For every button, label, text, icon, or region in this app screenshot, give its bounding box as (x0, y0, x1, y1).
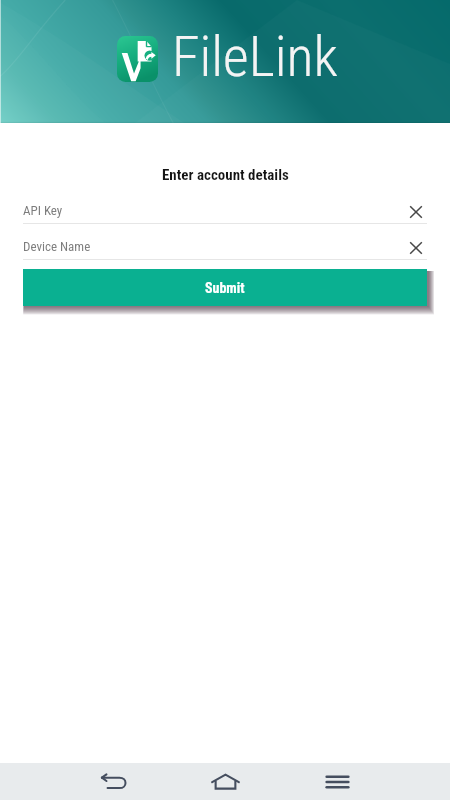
button[interactable]: Recent apps (314, 763, 360, 800)
staticText: Device Name (23, 239, 91, 254)
staticText: Submit (205, 280, 245, 296)
button[interactable]: Submit (23, 269, 427, 306)
staticText: Enter account details (162, 166, 289, 184)
button[interactable]: API Key (23, 201, 427, 224)
button[interactable]: Back (90, 763, 136, 800)
button[interactable]: Home (202, 763, 248, 800)
button[interactable]: Clear API Key (405, 202, 427, 224)
staticText: API Key (23, 203, 63, 218)
button[interactable]: Device Name (23, 237, 427, 260)
button[interactable]: Clear Device Name (405, 238, 427, 260)
staticText: FileLink (172, 24, 338, 90)
